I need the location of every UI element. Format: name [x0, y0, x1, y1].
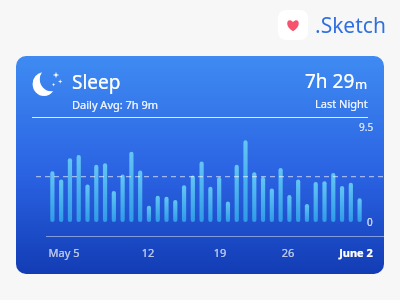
other: Sleep	[32, 69, 62, 99]
staticText: Last Night	[315, 96, 368, 111]
staticText: June 2	[334, 245, 378, 260]
staticText: .Sketch	[315, 11, 386, 40]
staticText: Sleep	[72, 69, 121, 95]
staticText: 26	[266, 245, 310, 260]
staticText: May 5	[42, 245, 86, 260]
staticText: 9.5	[359, 120, 374, 134]
button[interactable]: Sketch	[278, 10, 386, 40]
staticText: 0	[367, 215, 373, 229]
staticText: Daily Avg: 7h 9m	[72, 97, 159, 112]
button[interactable]: Sleep	[16, 56, 384, 274]
staticText: 12	[126, 245, 170, 260]
staticText: 19	[198, 245, 242, 260]
staticText: m	[355, 75, 368, 93]
staticText: 7h 29	[305, 68, 355, 94]
